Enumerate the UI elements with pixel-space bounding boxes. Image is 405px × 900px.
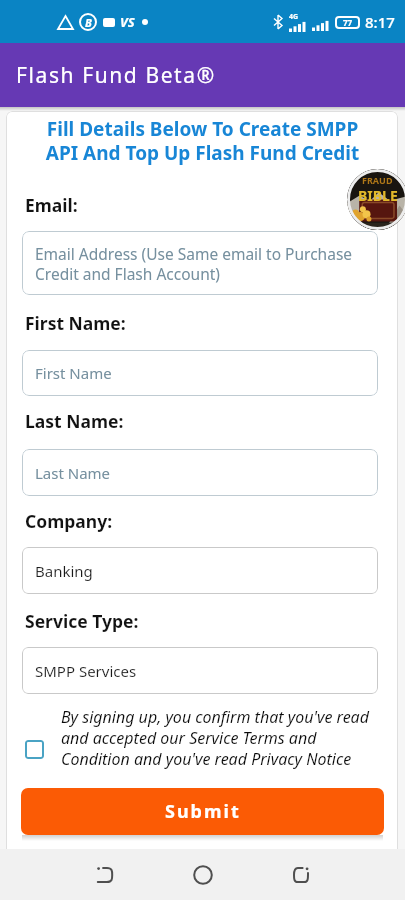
staticText: B xyxy=(85,15,92,30)
staticText: BIBLE xyxy=(358,186,398,205)
staticText: 8:17 xyxy=(365,12,395,32)
button[interactable]: Submit xyxy=(21,788,384,835)
staticText: Company: xyxy=(25,509,113,533)
staticText: 4G xyxy=(289,12,299,22)
staticText: FRAUD xyxy=(362,174,393,186)
staticText: Last Name xyxy=(35,463,111,483)
staticText: Fill Details Below To Create SMPP API An… xyxy=(0,116,405,165)
staticText: First Name xyxy=(35,363,112,383)
staticText: VS xyxy=(120,13,135,31)
staticText: Email Address (Use Same email to Purchas… xyxy=(35,243,353,284)
staticText: Email: xyxy=(25,193,78,217)
button[interactable]: FRAUD xyxy=(347,169,405,230)
staticText: Service Type: xyxy=(25,609,139,633)
button[interactable] xyxy=(179,851,227,899)
button[interactable] xyxy=(25,740,44,759)
staticText: Last Name: xyxy=(25,409,124,433)
button[interactable]: SMPP Services xyxy=(22,647,378,694)
button[interactable]: By signing up, you confirm that you've r… xyxy=(61,706,369,770)
button[interactable]: Banking xyxy=(22,547,378,594)
button[interactable]: First Name xyxy=(22,350,378,396)
staticText: Banking xyxy=(35,561,93,581)
staticText: 77 xyxy=(343,17,353,28)
staticText: SMPP Services xyxy=(35,661,137,681)
button[interactable]: Last Name xyxy=(22,449,378,496)
staticText: Submit xyxy=(165,799,241,824)
button[interactable]: Email Address (Use Same email to Purchas… xyxy=(22,231,378,295)
staticText: Flash Fund Beta® xyxy=(16,61,216,90)
staticText: First Name: xyxy=(25,311,126,335)
button[interactable] xyxy=(277,851,325,899)
button[interactable] xyxy=(81,851,129,899)
